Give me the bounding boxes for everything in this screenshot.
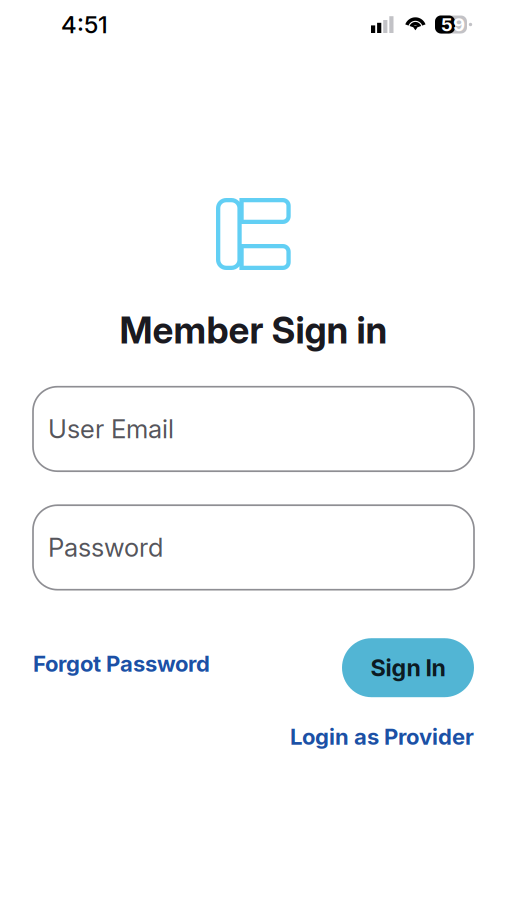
button[interactable]: User Email (33, 387, 474, 471)
staticText: Member Sign in (119, 308, 387, 352)
staticText: 4:51 (61, 10, 108, 39)
button[interactable]: Login as Provider (290, 723, 474, 750)
staticText: 59 (441, 13, 465, 36)
button[interactable]: Forgot Password (33, 654, 210, 681)
staticText: Password (48, 532, 163, 563)
staticText: Forgot Password (33, 650, 210, 677)
staticText: User Email (48, 413, 174, 444)
staticText: Login as Provider (290, 723, 474, 750)
button[interactable]: Sign In (342, 638, 474, 697)
button[interactable]: Password (33, 505, 474, 590)
staticText: Sign In (370, 654, 445, 682)
